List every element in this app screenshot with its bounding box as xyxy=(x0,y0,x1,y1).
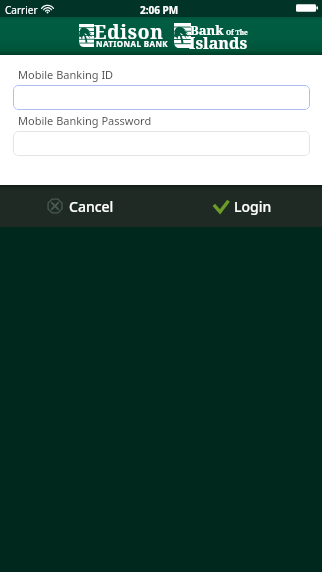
button[interactable]: Cancel xyxy=(33,185,129,227)
staticText: 2:06 PM xyxy=(140,3,179,17)
staticText: Bank xyxy=(190,21,224,39)
staticText: Cancel xyxy=(69,197,114,216)
staticText: NATIONAL BANK xyxy=(96,38,168,49)
staticText: Mobile Banking ID xyxy=(18,67,114,82)
staticText: Mobile Banking Password xyxy=(18,113,152,128)
button[interactable]: Login xyxy=(198,185,290,227)
staticText: Islands xyxy=(189,32,248,54)
button[interactable] xyxy=(13,131,310,156)
staticText: Of The xyxy=(226,28,248,37)
staticText: Edison xyxy=(94,19,164,45)
button[interactable] xyxy=(13,85,310,110)
staticText: Login xyxy=(234,197,272,216)
staticText: Carrier xyxy=(5,3,38,17)
